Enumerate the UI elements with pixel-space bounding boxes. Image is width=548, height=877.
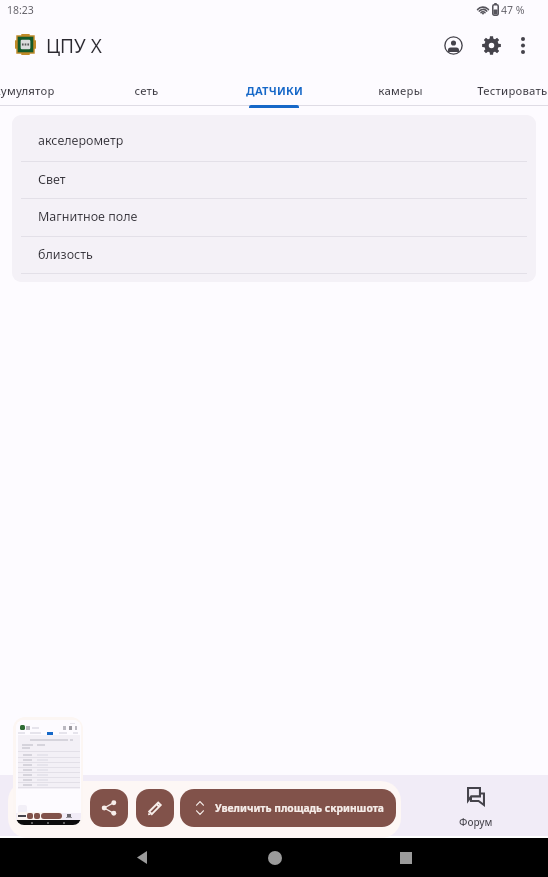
- button[interactable]: Свет: [12, 161, 536, 199]
- staticText: Форум: [459, 815, 493, 829]
- button[interactable]: Увеличить площадь скриншота: [180, 789, 396, 827]
- staticText: акселерометр: [38, 132, 124, 149]
- button[interactable]: аккумулятор: [0, 71, 74, 109]
- staticText: Свет: [38, 171, 66, 188]
- button[interactable]: Back: [121, 838, 163, 877]
- staticText: ЦПУ X: [46, 33, 102, 59]
- button[interactable]: Screenshot preview: [13, 717, 83, 829]
- button[interactable]: ДАТЧИКИ: [219, 71, 329, 109]
- button[interactable]: камеры: [345, 71, 455, 109]
- button[interactable]: Settings: [471, 25, 511, 65]
- staticText: Увеличить площадь скриншота: [215, 801, 384, 815]
- staticText: камеры: [378, 83, 423, 98]
- staticText: ДАТЧИКИ: [246, 83, 303, 98]
- staticText: Магнитное поле: [38, 208, 138, 225]
- staticText: Тестировать отчеты: [477, 83, 548, 98]
- button[interactable]: Форум: [416, 775, 536, 838]
- button[interactable]: Edit: [136, 789, 174, 827]
- button[interactable]: Recents: [385, 838, 427, 877]
- staticText: сеть: [134, 83, 159, 98]
- button[interactable]: Тестировать отчеты: [464, 71, 548, 109]
- staticText: 47 %: [501, 3, 525, 17]
- button[interactable]: акселерометр: [12, 115, 536, 161]
- button[interactable]: сеть: [91, 71, 201, 109]
- button[interactable]: Share: [90, 789, 128, 827]
- button[interactable]: близость: [12, 236, 536, 274]
- button[interactable]: Магнитное поле: [12, 198, 536, 236]
- staticText: аккумулятор: [0, 83, 55, 98]
- button[interactable]: Home: [254, 838, 296, 877]
- staticText: близость: [38, 246, 93, 263]
- button[interactable]: More options: [503, 25, 543, 65]
- button[interactable]: Account: [433, 25, 473, 65]
- staticText: 18:23: [7, 3, 34, 17]
